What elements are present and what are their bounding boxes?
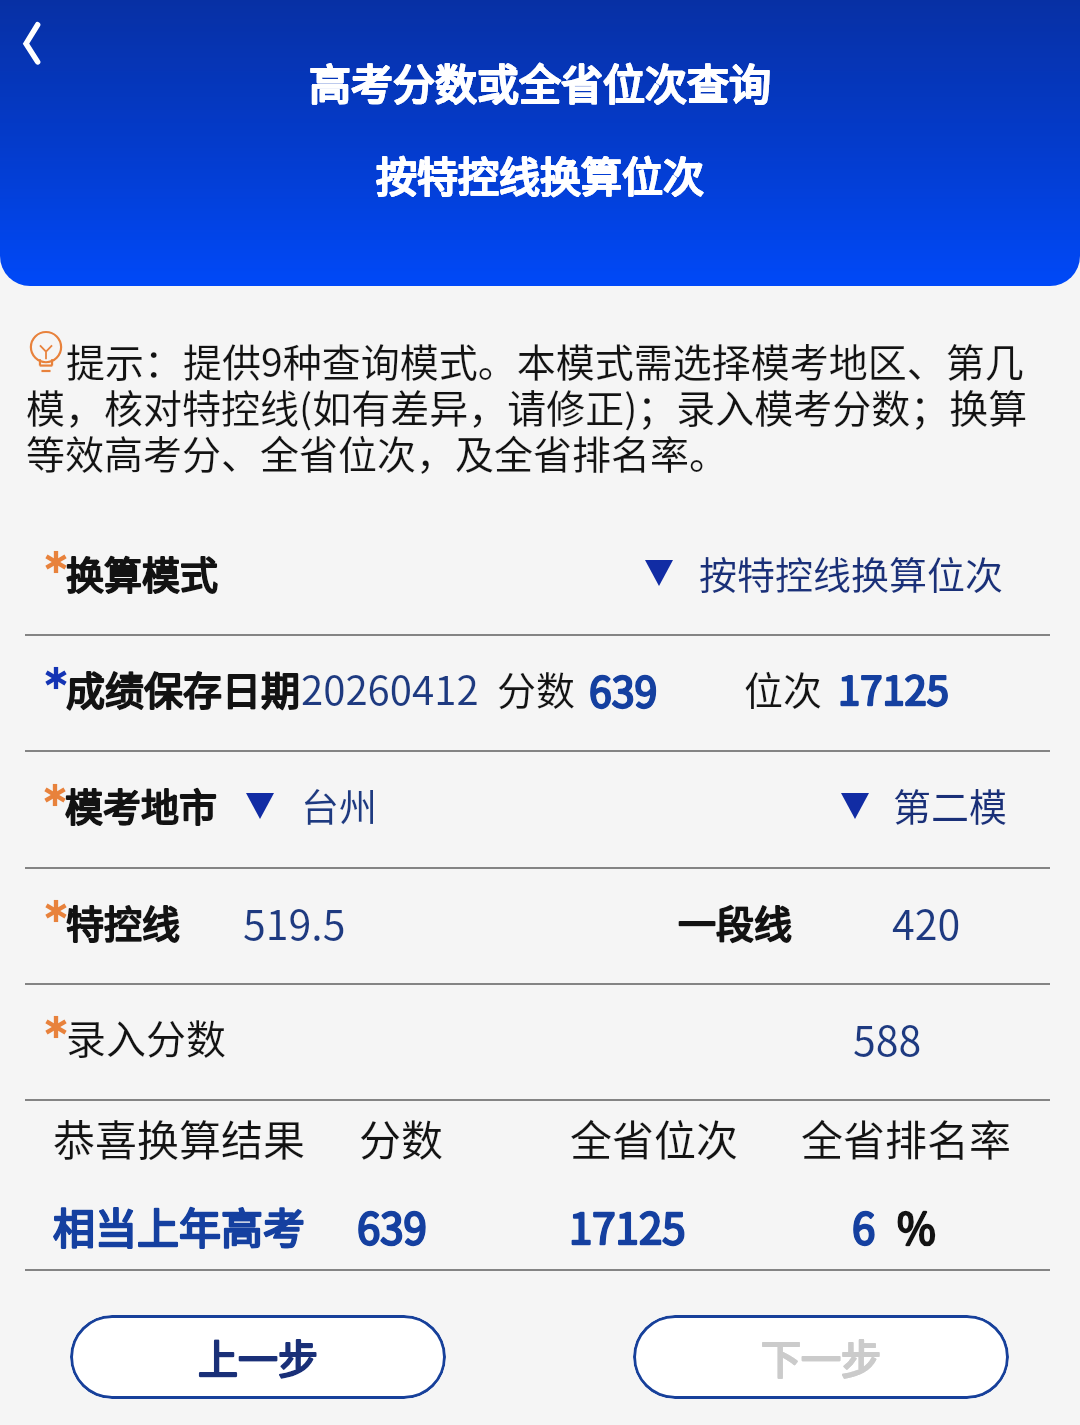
staticText: 台州 — [301, 777, 378, 832]
staticText: 639 — [589, 659, 658, 718]
staticText: 特控线 — [66, 894, 181, 949]
staticText: 17125 — [838, 659, 949, 717]
button[interactable]: 特控线 — [0, 867, 1080, 983]
staticText: 成绩保存日期 — [66, 660, 301, 716]
staticText: 录入分数 — [66, 1008, 226, 1066]
staticText: 等效高考分、全省位次，及全省排名率。 — [26, 424, 729, 480]
staticText: 按特控线换算位次 — [376, 144, 704, 203]
staticText: 模考地市 — [65, 777, 218, 832]
staticText: 换算模式 — [66, 545, 219, 600]
staticText: 特控线 — [66, 894, 181, 949]
staticText: 639 — [589, 659, 658, 718]
staticText: 全省位次 — [570, 1107, 739, 1168]
staticText: 下一步 — [761, 1328, 881, 1386]
staticText: 按特控线换算位次 — [376, 144, 704, 203]
staticText: 相当上年高考 — [53, 1195, 306, 1256]
button[interactable]: 录入分数 — [0, 983, 1080, 1099]
button[interactable]: Back — [4, 12, 62, 70]
button[interactable]: 下一步 — [633, 1315, 1009, 1399]
staticText: 相当上年高考 — [53, 1195, 306, 1256]
button[interactable]: 换算模式 — [0, 518, 1080, 634]
staticText: 换算模式 — [66, 545, 219, 600]
staticText: 分数 — [359, 1107, 444, 1168]
button[interactable]: 模考地市 — [0, 750, 1080, 867]
staticText: 高考分数或全省位次查询 — [309, 51, 772, 112]
staticText: 模，核对特控线(如有差异，请修正)；录入模考分数；换算 — [26, 378, 1028, 434]
staticText: 420 — [892, 892, 961, 951]
staticText: 上一步 — [198, 1328, 318, 1386]
button[interactable]: 成绩保存日期 — [0, 634, 1080, 750]
staticText: 全省排名率 — [801, 1107, 1012, 1168]
staticText: 6 — [852, 1195, 876, 1256]
staticText: 恭喜换算结果 — [53, 1107, 306, 1168]
staticText: % — [897, 1195, 936, 1256]
staticText: 成绩保存日期 — [66, 660, 301, 716]
staticText: 下一步 — [761, 1328, 881, 1386]
staticText: % — [897, 1195, 936, 1256]
staticText: 519.5 — [243, 892, 346, 951]
staticText: 20260412 — [301, 659, 479, 717]
staticText: 17125 — [569, 1195, 686, 1256]
staticText: 模考地市 — [65, 777, 218, 832]
staticText: 提示：提供9种查询模式。本模式需选择模考地区、第几 — [66, 332, 1024, 388]
staticText: 6 — [852, 1195, 876, 1256]
staticText: 高考分数或全省位次查询 — [309, 51, 772, 112]
staticText: 588 — [853, 1008, 922, 1067]
staticText: 位次 — [744, 660, 823, 716]
staticText: 按特控线换算位次 — [699, 545, 1004, 600]
staticText: 639 — [357, 1195, 427, 1256]
staticText: 一段线 — [678, 894, 793, 949]
staticText: 17125 — [569, 1195, 686, 1256]
staticText: 分数 — [497, 660, 576, 716]
staticText: 639 — [357, 1195, 427, 1256]
staticText: 17125 — [838, 659, 949, 717]
staticText: 一段线 — [678, 894, 793, 949]
button[interactable]: 上一步 — [70, 1315, 446, 1399]
staticText: 上一步 — [198, 1328, 318, 1386]
staticText: 第二模 — [893, 777, 1008, 832]
